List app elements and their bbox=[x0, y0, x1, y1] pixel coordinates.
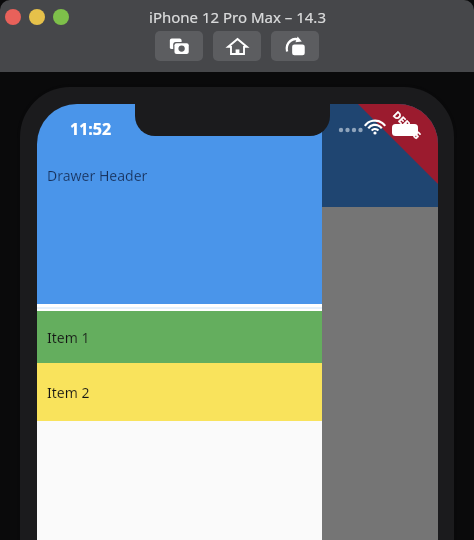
button[interactable] bbox=[29, 9, 45, 25]
staticText: 11:52 bbox=[70, 118, 112, 140]
button[interactable]: Item 1 bbox=[37, 311, 322, 363]
staticText: DEBUG bbox=[390, 108, 425, 142]
button[interactable] bbox=[5, 9, 21, 25]
staticText: iPhone 12 Pro Max – 14.3 bbox=[149, 7, 326, 27]
staticText: Drawer Header bbox=[47, 166, 148, 185]
button[interactable]: Rotate bbox=[271, 31, 319, 61]
staticText: Item 2 bbox=[47, 383, 90, 402]
button[interactable]: Home bbox=[213, 31, 261, 61]
button[interactable] bbox=[53, 9, 69, 25]
button[interactable]: Item 2 bbox=[37, 363, 322, 421]
staticText: Item 1 bbox=[47, 328, 90, 347]
button[interactable]: Screenshot bbox=[155, 31, 203, 61]
